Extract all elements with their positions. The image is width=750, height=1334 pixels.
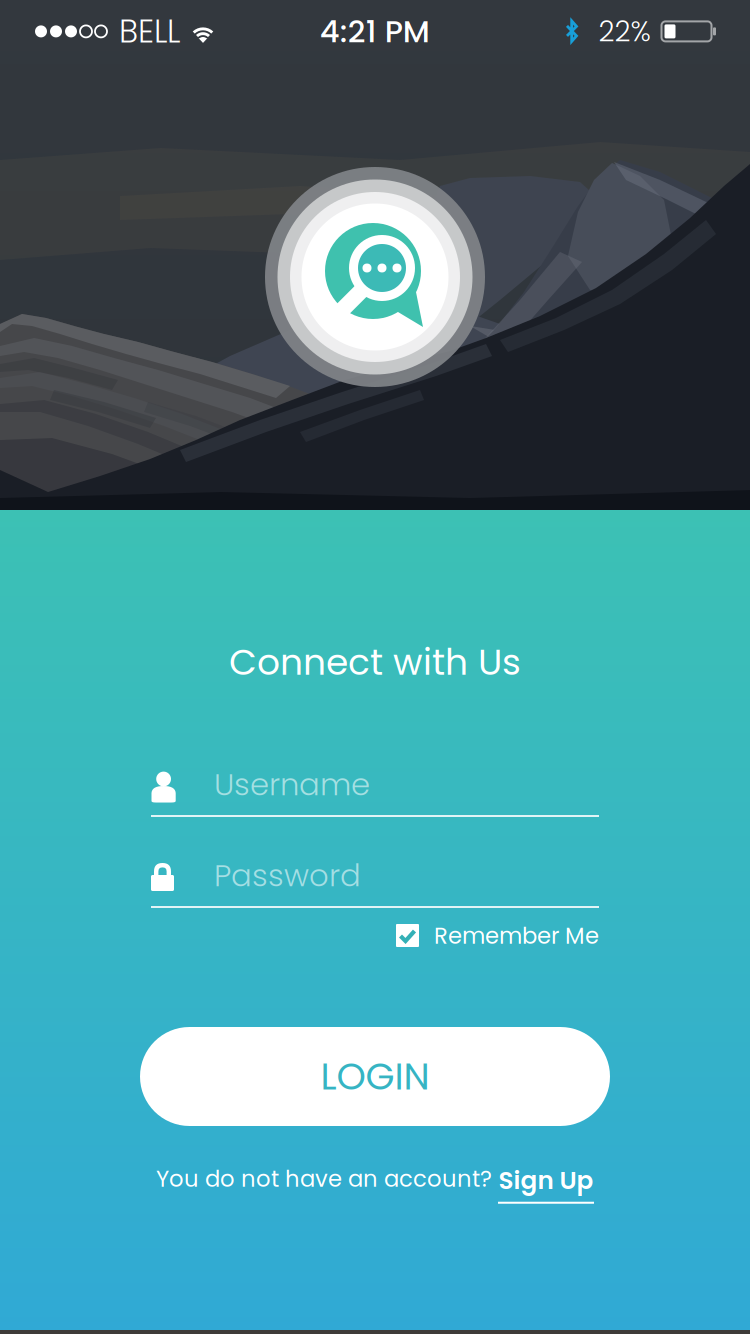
staticText: Sign Up [498,1163,593,1198]
staticText: BELL [119,9,180,54]
staticText: Password [214,854,361,897]
staticText: 22% [598,12,650,51]
staticText: You do not have an account? [156,1163,498,1195]
staticText: Remember Me [434,920,599,952]
staticText: LOGIN [320,1050,429,1103]
staticText: Username [214,763,370,806]
button[interactable]: Remember Me [396,924,599,952]
staticText: Connect with Us [229,637,521,687]
button[interactable]: You do not have an account? [156,1163,594,1204]
button[interactable]: LOGIN [140,1027,610,1126]
staticText: 4:21 PM [320,10,430,53]
